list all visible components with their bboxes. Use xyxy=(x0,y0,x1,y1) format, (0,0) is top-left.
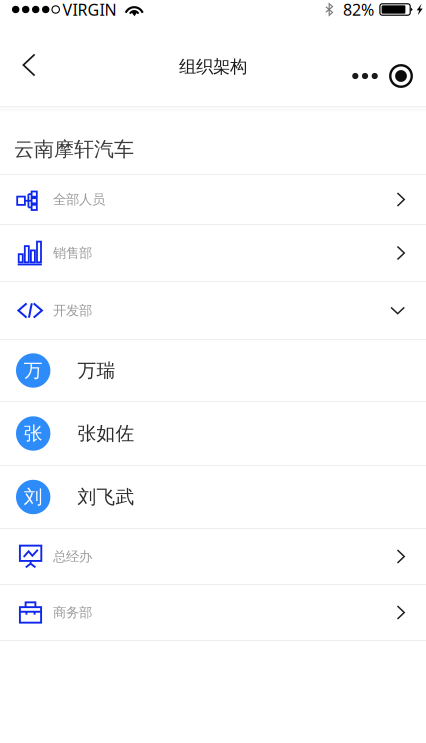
staticText: 商务部 xyxy=(53,604,92,621)
staticText: 刘飞武 xyxy=(77,485,134,508)
button[interactable]: Back xyxy=(7,43,51,87)
staticText: VIRGIN xyxy=(62,0,116,20)
button[interactable]: 张 xyxy=(0,402,426,466)
button[interactable]: 全部人员 xyxy=(0,175,426,225)
staticText: 万瑞 xyxy=(77,359,115,382)
staticText: 张如佐 xyxy=(77,422,134,445)
button[interactable]: 万 xyxy=(0,340,426,402)
button[interactable]: 总经办 xyxy=(0,529,426,585)
button[interactable]: 开发部 xyxy=(0,282,426,340)
staticText: 刘 xyxy=(24,485,43,508)
staticText: 开发部 xyxy=(53,302,92,319)
button[interactable]: Close xyxy=(385,61,417,91)
staticText: 组织架构 xyxy=(179,56,247,77)
staticText: 全部人员 xyxy=(53,191,105,208)
button[interactable]: 商务部 xyxy=(0,585,426,641)
staticText: 销售部 xyxy=(53,245,92,261)
staticText: 82% xyxy=(343,0,374,20)
staticText: 万 xyxy=(24,359,43,382)
button[interactable]: 刘 xyxy=(0,466,426,529)
button[interactable]: More xyxy=(345,61,385,91)
button[interactable]: 销售部 xyxy=(0,225,426,282)
staticText: 总经办 xyxy=(53,548,92,565)
staticText: 云南摩轩汽车 xyxy=(14,137,134,162)
staticText: 张 xyxy=(24,422,43,445)
